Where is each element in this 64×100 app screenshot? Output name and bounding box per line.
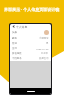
button[interactable]: Back (10, 24, 51, 29)
button[interactable]: 性别 (10, 41, 51, 46)
staticText: 所在地区 (12, 52, 22, 55)
button[interactable]: 头像 (10, 29, 51, 36)
staticText: 性别 (12, 42, 17, 45)
button[interactable]: 昵称 (10, 36, 51, 41)
staticText: 小明同学 (39, 37, 49, 40)
staticText: 男 (46, 42, 49, 45)
staticText: 生日 (12, 47, 17, 50)
staticText: 头像 (12, 31, 17, 34)
staticText: 界面展示 · 个人信息页面设计稿 (4, 7, 60, 12)
other: Back (12, 25, 15, 28)
button[interactable]: 所在地区 (10, 51, 51, 56)
staticText: 个性签名 (12, 57, 22, 60)
staticText: 北京市 (41, 52, 49, 55)
button[interactable]: 生日 (10, 46, 51, 51)
staticText: 个人信息 (16, 25, 28, 29)
staticText: 热爱生活 (39, 57, 49, 60)
staticText: 昵称 (12, 37, 17, 40)
staticText: 1995-01-20 (36, 47, 49, 50)
button[interactable]: 个性签名 (10, 56, 51, 61)
